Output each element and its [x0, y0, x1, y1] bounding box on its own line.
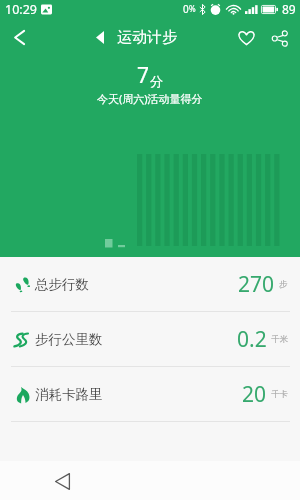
staticText: 千卡 [271, 389, 288, 400]
staticText: 千米 [271, 334, 288, 345]
button[interactable]: 步行公里数 [0, 312, 300, 366]
staticText: 20 [242, 380, 267, 409]
staticText: 总步行数 [35, 276, 89, 293]
staticText: 步行公里数 [35, 331, 103, 348]
button[interactable]: 总步行数 [0, 257, 300, 311]
staticText: 10:29 [5, 1, 37, 18]
staticText: 分 [150, 73, 163, 89]
button[interactable]: Back [0, 18, 38, 57]
staticText: 0 [183, 2, 189, 16]
staticText: 7 [137, 61, 150, 90]
button[interactable]: Favorite [229, 21, 263, 55]
staticText: 步 [279, 279, 288, 290]
staticText: 270 [238, 270, 275, 299]
staticText: 今天(周六)活动量得分 [97, 91, 203, 106]
staticText: % [189, 3, 196, 14]
staticText: 0.2 [237, 325, 267, 354]
button[interactable]: Back [46, 465, 78, 497]
staticText: 消耗卡路里 [35, 386, 103, 403]
staticText: 89 [282, 1, 296, 17]
staticText: 运动计步 [117, 28, 177, 47]
button[interactable]: 消耗卡路里 [0, 367, 300, 421]
button[interactable]: Share [263, 21, 297, 55]
